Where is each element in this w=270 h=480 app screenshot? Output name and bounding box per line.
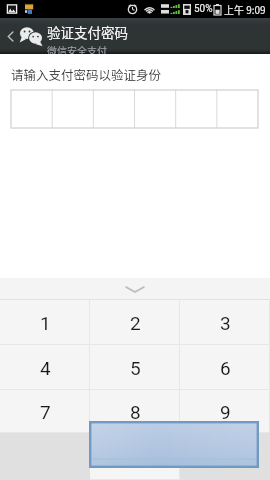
staticText: 微信安全支付 (47, 43, 107, 57)
button[interactable]: 6 (180, 345, 270, 390)
button[interactable]: Blank (0, 433, 90, 480)
staticText: 50% (194, 3, 213, 15)
button[interactable]: 8 (90, 390, 180, 433)
staticText: 7 (40, 401, 51, 423)
button[interactable]: Hide keyboard (0, 278, 270, 300)
staticText: 5 (130, 357, 141, 379)
button[interactable]: 2 (90, 300, 180, 345)
staticText: 0 (130, 446, 141, 468)
button[interactable]: 1 (0, 300, 90, 345)
staticText: 3 (220, 312, 231, 334)
staticText: 2 (130, 312, 141, 334)
button[interactable]: 4 (0, 345, 90, 390)
button[interactable]: 5 (90, 345, 180, 390)
button[interactable]: 0 (90, 433, 180, 480)
staticText: 9 (220, 401, 231, 423)
button[interactable]: Delete (180, 433, 270, 480)
staticText: 4 (40, 357, 51, 379)
staticText: 请输入支付密码以验证身份 (11, 65, 162, 83)
staticText: 1 (40, 312, 51, 334)
staticText: 验证支付密码 (47, 22, 128, 42)
button[interactable]: 9 (180, 390, 270, 433)
staticText: 6 (220, 357, 231, 379)
staticText: 上午 9:09 (224, 2, 266, 16)
button[interactable]: 7 (0, 390, 90, 433)
button[interactable]: 3 (180, 300, 270, 345)
staticText: 8 (130, 401, 141, 423)
button[interactable]: Back (0, 18, 20, 54)
